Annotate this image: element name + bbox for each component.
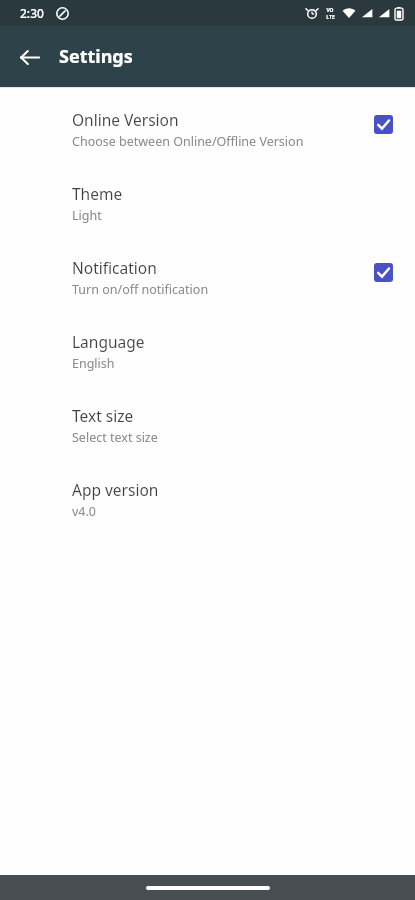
button[interactable]: Back — [10, 38, 48, 76]
staticText: Notification — [72, 257, 157, 278]
staticText: v4.0 — [72, 503, 97, 520]
button[interactable]: Theme — [0, 180, 415, 254]
staticText: Turn on/off notification — [72, 281, 209, 298]
button[interactable]: App version — [0, 476, 415, 550]
staticText: 2:30 — [20, 5, 44, 21]
button[interactable]: Language — [0, 328, 415, 402]
staticText: Online Version — [72, 109, 179, 130]
button[interactable]: Notification toggle — [371, 260, 395, 284]
button[interactable]: Notification — [0, 254, 415, 328]
staticText: Text size — [72, 405, 134, 426]
staticText: LTE — [326, 14, 335, 19]
staticText: VO — [326, 7, 334, 14]
button[interactable]: Online Version — [0, 106, 415, 180]
staticText: English — [72, 355, 115, 372]
button[interactable]: Online Version toggle — [371, 112, 395, 136]
staticText: Select text size — [72, 429, 158, 446]
staticText: Settings — [59, 44, 133, 69]
staticText: Light — [72, 207, 102, 224]
staticText: Choose between Online/Offline Version — [72, 133, 304, 150]
staticText: App version — [72, 479, 159, 500]
staticText: Theme — [72, 183, 123, 204]
button[interactable]: Text size — [0, 402, 415, 476]
staticText: Language — [72, 331, 145, 352]
